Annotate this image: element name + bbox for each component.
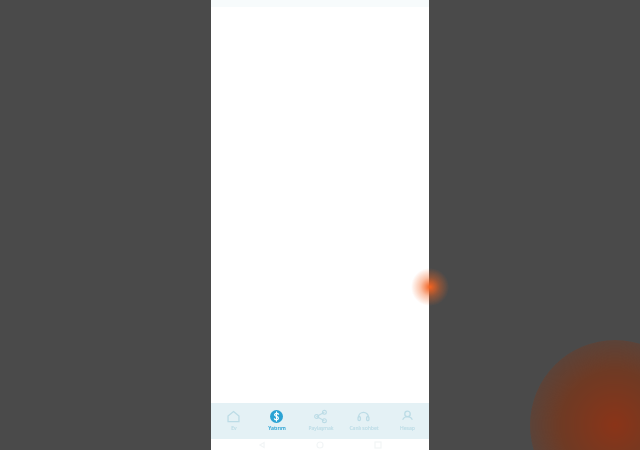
staticText: Paylaşmak: [308, 425, 334, 432]
button[interactable]: Recents: [371, 439, 385, 450]
button[interactable]: Yatırım: [255, 403, 298, 439]
button[interactable]: Canlı sohbet: [342, 403, 385, 439]
button[interactable]: Ev: [212, 403, 255, 439]
staticText: Hesap: [400, 425, 415, 432]
button[interactable]: Back: [255, 439, 269, 450]
staticText: Ev: [231, 425, 237, 432]
staticText: Canlı sohbet: [349, 425, 379, 432]
staticText: Yatırım: [268, 425, 286, 432]
button[interactable]: Home: [313, 439, 327, 450]
button[interactable]: Hesap: [386, 403, 429, 439]
button[interactable]: Paylaşmak: [299, 403, 342, 439]
